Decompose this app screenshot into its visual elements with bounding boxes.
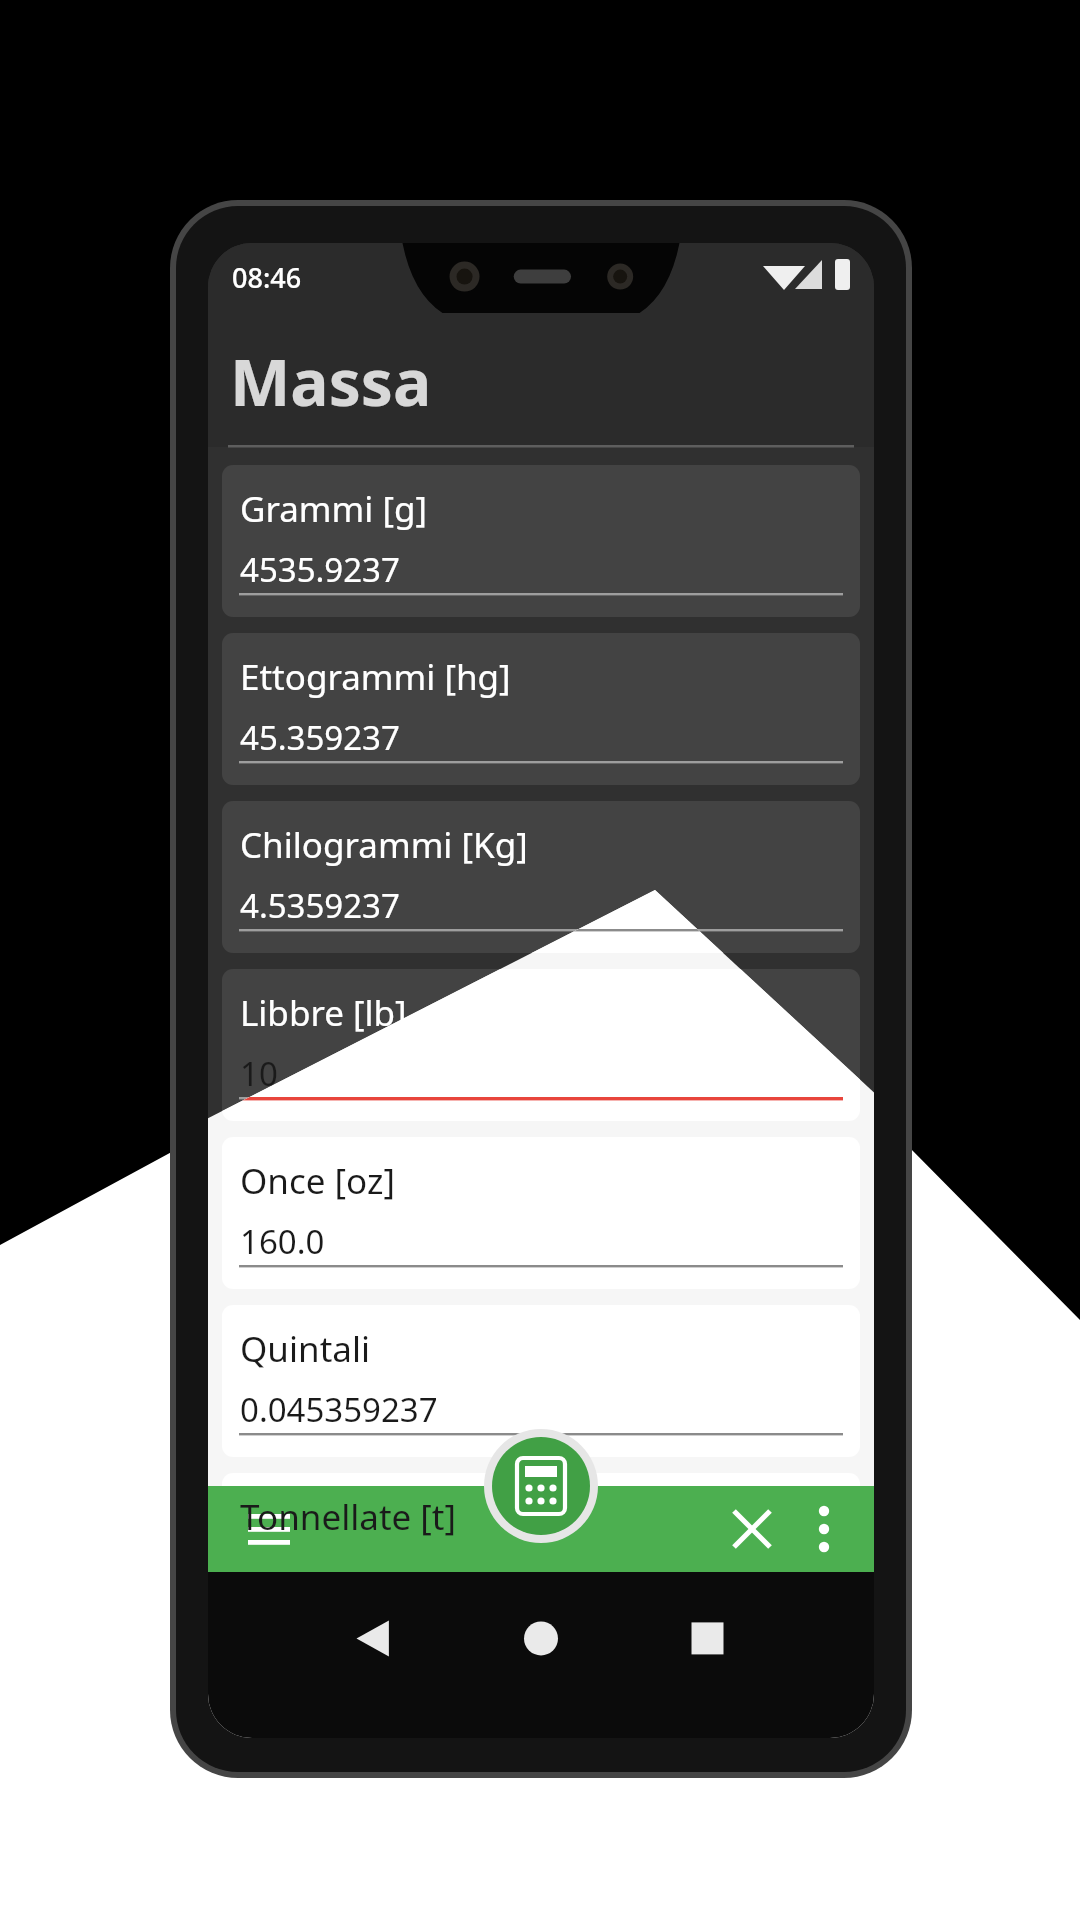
button[interactable]: Tonnellate [t] (222, 1473, 860, 1625)
staticText: 45.359237 (240, 715, 400, 760)
button[interactable]: Ettogrammi [hg] (222, 633, 860, 785)
button[interactable]: Close (714, 1486, 794, 1572)
staticText: Grammi [g] (240, 485, 428, 533)
button[interactable]: Quintali (222, 1305, 860, 1457)
staticText: Quintali (240, 1325, 370, 1373)
staticText: 10 (240, 1051, 278, 1096)
button[interactable]: Grammi [g] (222, 465, 860, 617)
staticText: Once [oz] (240, 1157, 395, 1205)
staticText: Massa (230, 338, 432, 425)
button[interactable]: Menu (208, 1486, 288, 1572)
staticText: 4.5359237 (240, 883, 400, 928)
staticText: 0.045359237 (240, 1387, 438, 1432)
staticText: Tonnellate [t] (240, 1493, 457, 1541)
staticText: 08:46 (232, 259, 302, 296)
staticText: 160.0 (240, 1219, 325, 1264)
button[interactable]: Libbre [lb] (222, 969, 860, 1121)
button[interactable]: Chilogrammi [Kg] (222, 801, 860, 953)
button[interactable]: Calculator (484, 1429, 598, 1543)
staticText: 4535.9237 (240, 547, 400, 592)
staticText: Ettogrammi [hg] (240, 653, 511, 701)
staticText: Libbre [lb] (240, 989, 407, 1037)
staticText: Chilogrammi [Kg] (240, 821, 528, 869)
button[interactable]: Once [oz] (222, 1137, 860, 1289)
button[interactable]: More options (794, 1486, 874, 1572)
